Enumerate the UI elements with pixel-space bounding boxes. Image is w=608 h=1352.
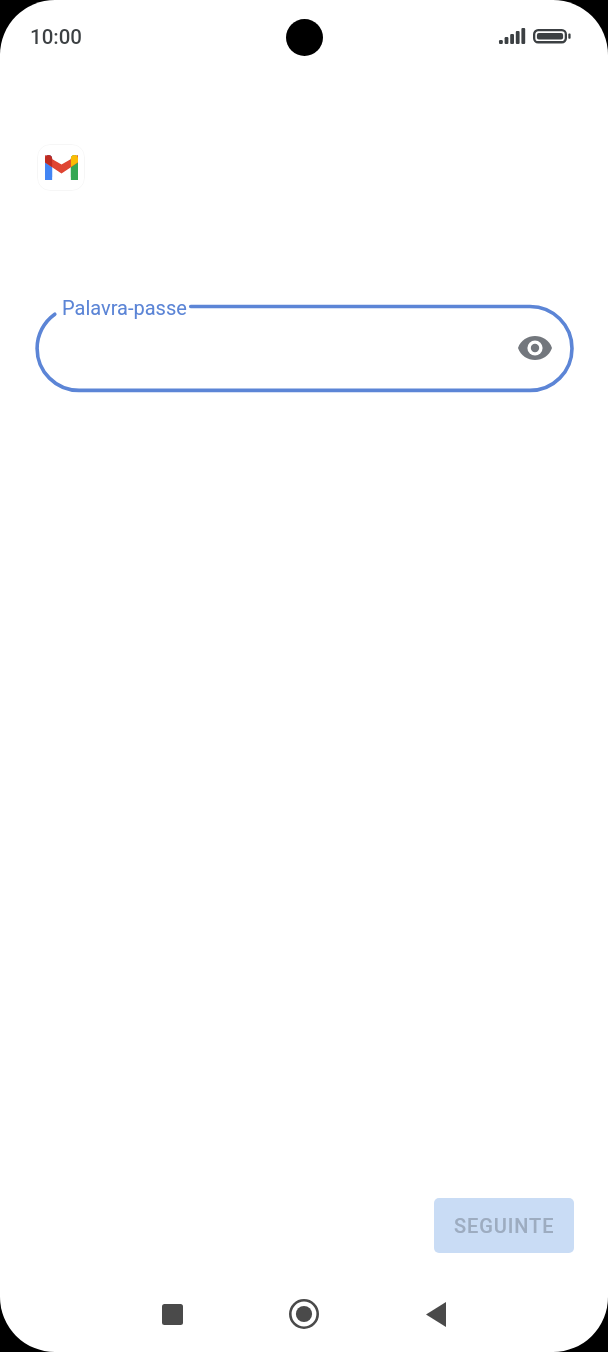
button[interactable]: Back [396,1274,476,1352]
button[interactable]: Palavra-passe [33,296,575,400]
staticText: Palavra-passe [62,296,187,319]
button[interactable]: Show password [511,324,559,372]
button[interactable]: SEGUINTE [434,1198,574,1253]
button[interactable]: Recent apps [132,1274,212,1352]
button[interactable]: Home [264,1274,344,1352]
staticText: SEGUINTE [454,1214,555,1237]
staticText: 10:00 [30,25,83,49]
